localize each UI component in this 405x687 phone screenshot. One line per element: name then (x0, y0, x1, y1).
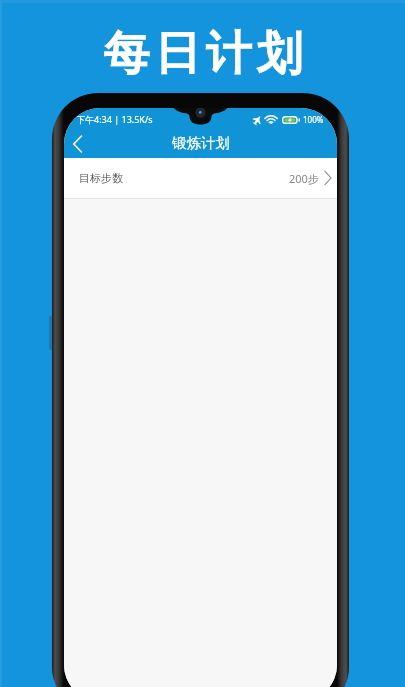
staticText: 目标步数 (79, 171, 123, 185)
staticText: 每日计划 (101, 25, 305, 83)
staticText: 下午4:34 | 13.5K/s (76, 113, 153, 125)
button[interactable]: 目标步数 (64, 158, 337, 198)
staticText: 锻炼计划 (172, 134, 230, 152)
button[interactable]: Back (64, 128, 94, 158)
staticText: 200步 (289, 171, 319, 186)
staticText: 100% (303, 114, 324, 125)
